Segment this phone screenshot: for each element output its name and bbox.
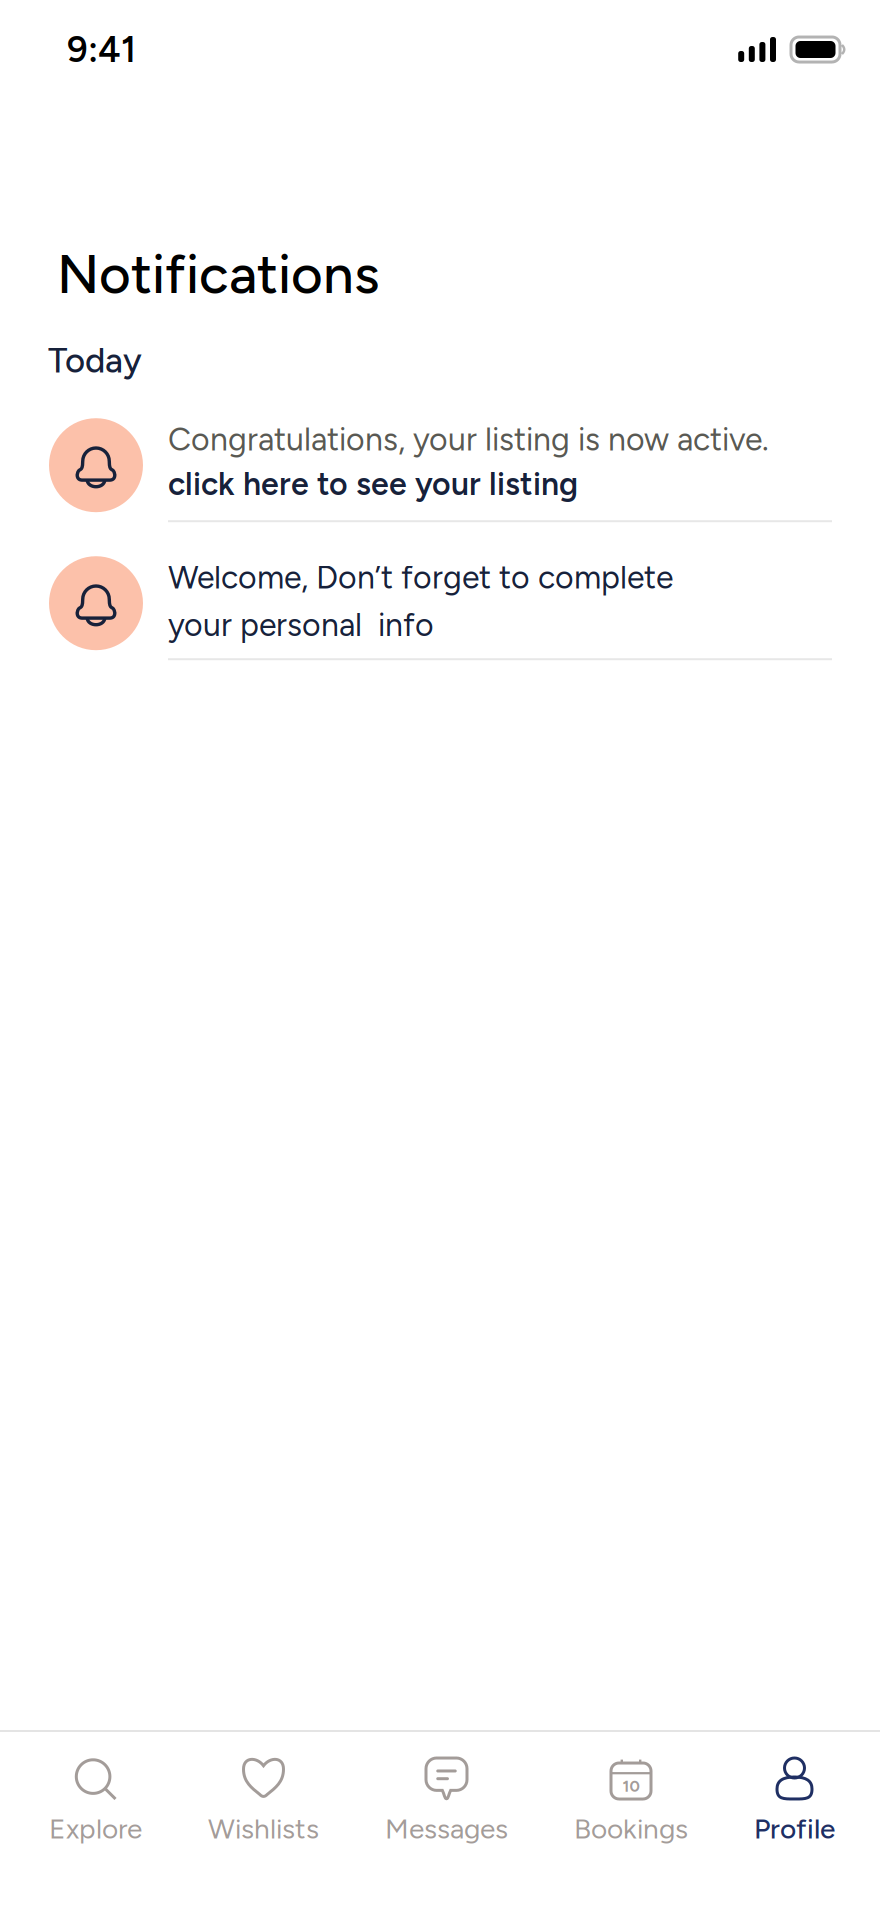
staticText: Notifications (57, 241, 379, 307)
staticText: 10 (622, 1777, 639, 1796)
button[interactable]: Explore (49, 1753, 142, 1846)
staticText: Wishlists (208, 1812, 319, 1846)
staticText: Messages (385, 1812, 508, 1846)
button[interactable]: Welcome, Don’t forget to complete (0, 556, 880, 660)
button[interactable]: 10 (574, 1753, 688, 1846)
staticText: click here to see your listing (168, 465, 578, 503)
staticText: Congratulations, your listing is now act… (168, 420, 769, 459)
staticText: Bookings (574, 1812, 688, 1846)
button[interactable]: Congratulations, your listing is now act… (0, 418, 880, 522)
button[interactable]: Wishlists (208, 1753, 319, 1846)
staticText: 9:41 (67, 28, 136, 71)
staticText: your personal info (168, 606, 434, 644)
staticText: Today (48, 340, 142, 381)
button[interactable]: Profile (754, 1753, 835, 1846)
button[interactable]: Messages (385, 1753, 508, 1846)
staticText: Profile (754, 1812, 835, 1846)
staticText: Welcome, Don’t forget to complete (168, 558, 673, 597)
staticText: Explore (49, 1812, 142, 1846)
